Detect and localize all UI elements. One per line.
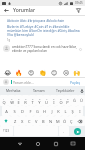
- staticText: N: [49, 119, 53, 124]
- staticText: Paylaş: [70, 80, 81, 85]
- staticText: R: [24, 100, 27, 105]
- staticText: E: [17, 100, 20, 105]
- button[interactable]: 🙌: [73, 68, 81, 76]
- button[interactable]: Paylaş: [69, 80, 82, 85]
- button[interactable]: X: [19, 116, 26, 126]
- staticText: S: [13, 109, 16, 114]
- staticText: Tamam: [33, 88, 45, 93]
- button[interactable]: M: [54, 116, 61, 126]
- staticText: 0: [67, 97, 69, 100]
- button[interactable]: B: [40, 116, 47, 126]
- button[interactable]: F: [26, 106, 34, 116]
- button[interactable]: 👏: [39, 68, 47, 76]
- button[interactable]: 3: [15, 95, 22, 106]
- staticText: Yorum ekle...: [13, 80, 69, 85]
- button[interactable]: 🔥: [15, 68, 23, 76]
- button[interactable]: D: [18, 106, 26, 116]
- button[interactable]: 9: [57, 95, 64, 106]
- button[interactable]: Tamam: [26, 86, 52, 95]
- button[interactable]: Z: [11, 116, 19, 126]
- staticText: I: [79, 109, 81, 114]
- staticText: Bizlerin #Turkiye #Coin #1in #kesinlikle…: [7, 24, 81, 37]
- staticText: I: [53, 100, 55, 105]
- staticText: T: [31, 100, 34, 105]
- staticText: 😂: [4, 69, 12, 76]
- button[interactable]: 😍: [27, 68, 35, 76]
- button[interactable]: 5: [29, 95, 36, 106]
- button[interactable]: J: [48, 106, 55, 116]
- button[interactable]: 2: [8, 95, 15, 106]
- button[interactable]: Ş: [69, 106, 76, 116]
- button[interactable]: S: [10, 106, 18, 116]
- staticText: 4: [25, 97, 27, 100]
- button[interactable]: I: [76, 106, 83, 116]
- staticText: Ç: [70, 119, 73, 124]
- staticText: 9: [60, 97, 62, 100]
- button[interactable]: K: [55, 106, 62, 116]
- button[interactable]: C: [26, 116, 33, 126]
- staticText: 2: [11, 97, 13, 100]
- button[interactable]: 7: [43, 95, 50, 106]
- button[interactable]: ?123: [0, 126, 13, 136]
- button[interactable]: Ü: [78, 95, 85, 106]
- staticText: C: [28, 119, 31, 124]
- staticText: L: [64, 109, 67, 114]
- button[interactable]: Home: [29, 137, 47, 150]
- staticText: 7: [46, 97, 48, 100]
- staticText: J: [51, 109, 53, 114]
- staticText: W: [10, 100, 14, 105]
- button[interactable]: Send: [74, 128, 81, 135]
- staticText: Z: [14, 119, 17, 124]
- button[interactable]: 😊: [50, 68, 58, 76]
- button[interactable]: Back: [11, 137, 29, 150]
- button[interactable]: G: [34, 106, 41, 116]
- staticText: O: [59, 100, 63, 105]
- button[interactable]: H: [41, 106, 48, 116]
- button[interactable]: 6: [36, 95, 43, 106]
- staticText: X: [21, 119, 24, 124]
- button[interactable]: N: [47, 116, 54, 126]
- button[interactable]: V: [33, 116, 40, 126]
- staticText: 😍: [28, 69, 35, 76]
- staticText: Yorumlar: [13, 7, 36, 14]
- staticText: 3: [18, 97, 20, 100]
- button[interactable]: 1: [0, 95, 8, 106]
- button[interactable]: Backspace: [75, 116, 85, 126]
- staticText: Q: [2, 100, 6, 105]
- staticText: U: [45, 100, 48, 105]
- staticText: K: [57, 109, 60, 114]
- staticText: B: [42, 119, 45, 124]
- staticText: 6: [39, 97, 41, 100]
- button[interactable]: Filter: [75, 7, 82, 14]
- staticText: 🔥: [15, 69, 23, 76]
- staticText: 1: [3, 97, 5, 100]
- button[interactable]: Back: [3, 7, 10, 14]
- staticText: A: [5, 109, 8, 114]
- button[interactable]: 😢: [62, 68, 70, 76]
- button[interactable]: Teşekkürler: [52, 86, 78, 95]
- button[interactable]: A: [2, 106, 10, 116]
- button[interactable]: Recents: [47, 137, 65, 150]
- button[interactable]: Ö: [61, 116, 68, 126]
- button[interactable]: Voice input: [78, 86, 85, 95]
- staticText: H: [43, 109, 46, 114]
- staticText: 🙌: [73, 69, 81, 76]
- staticText: Ö: [63, 119, 67, 124]
- staticText: 09:45: [75, 1, 83, 5]
- staticText: Teşekkürler: [56, 88, 75, 93]
- button[interactable]: Shift: [0, 116, 11, 126]
- button[interactable]: 8: [50, 95, 57, 106]
- button[interactable]: Ç: [68, 116, 75, 126]
- button[interactable]: 0: [64, 95, 71, 106]
- button[interactable]: Hide keyboard: [65, 137, 81, 150]
- staticText: 👏: [39, 69, 47, 76]
- staticText: 8: [53, 97, 55, 100]
- button[interactable]: Ğ: [71, 95, 78, 106]
- staticText: .: [63, 129, 65, 134]
- button[interactable]: L: [62, 106, 69, 116]
- button[interactable]: Merhaba: [0, 86, 26, 95]
- button[interactable]: 4: [22, 95, 29, 106]
- button[interactable]: 😂: [4, 68, 12, 76]
